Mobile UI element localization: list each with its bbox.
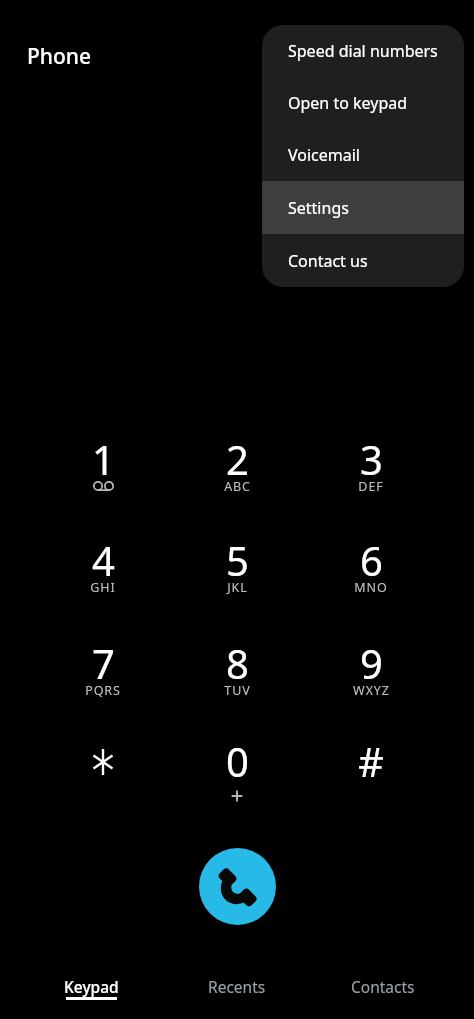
staticText: 2 — [226, 432, 249, 486]
button[interactable]: # — [304, 734, 438, 835]
staticText: Phone — [27, 42, 92, 71]
staticText: Open to keypad — [288, 92, 408, 114]
staticText: PQRS — [85, 682, 121, 699]
button[interactable]: Contacts — [310, 957, 456, 1019]
staticText: GHI — [90, 579, 116, 596]
button[interactable]: Recents — [164, 957, 310, 1019]
staticText: Contacts — [351, 976, 415, 997]
staticText: 0 — [226, 734, 249, 788]
button[interactable]: 4 — [36, 533, 170, 634]
staticText: 5 — [226, 533, 249, 587]
staticText: WXYZ — [353, 682, 390, 699]
button[interactable]: 5 — [170, 533, 304, 634]
staticText: 7 — [92, 636, 115, 690]
staticText: Voicemail — [288, 144, 360, 166]
staticText: Settings — [288, 197, 349, 219]
button[interactable]: 8 — [170, 636, 304, 737]
button[interactable]: 0 — [170, 734, 304, 835]
button[interactable]: 3 — [304, 432, 438, 533]
staticText: 3 — [360, 432, 383, 486]
staticText: 4 — [92, 533, 115, 587]
staticText: 6 — [360, 533, 383, 587]
staticText: TUV — [224, 682, 251, 699]
button[interactable]: 7 — [36, 636, 170, 737]
staticText: 1 — [92, 432, 115, 486]
button[interactable]: 1 — [36, 432, 170, 533]
button[interactable]: Voicemail — [262, 129, 464, 181]
staticText: Keypad — [64, 976, 119, 997]
button[interactable]: Call — [199, 848, 276, 925]
button[interactable]: Speed dial numbers — [262, 25, 464, 77]
button[interactable]: 9 — [304, 636, 438, 737]
staticText: MNO — [354, 579, 388, 596]
staticText: Speed dial numbers — [288, 40, 438, 62]
staticText: 8 — [226, 636, 249, 690]
staticText: 9 — [360, 636, 383, 690]
staticText: Recents — [208, 976, 266, 997]
button[interactable]: 6 — [304, 533, 438, 634]
staticText: Contact us — [288, 250, 368, 272]
staticText: ABC — [224, 478, 251, 495]
button[interactable]: Settings — [262, 181, 464, 234]
button[interactable]: 2 — [170, 432, 304, 533]
button[interactable]: * — [36, 734, 170, 835]
button[interactable]: Contact us — [262, 234, 464, 287]
staticText: JKL — [227, 579, 248, 596]
staticText: DEF — [358, 478, 384, 495]
button[interactable]: Open to keypad — [262, 77, 464, 129]
button[interactable]: Keypad — [18, 957, 164, 1019]
staticText: # — [358, 734, 384, 788]
